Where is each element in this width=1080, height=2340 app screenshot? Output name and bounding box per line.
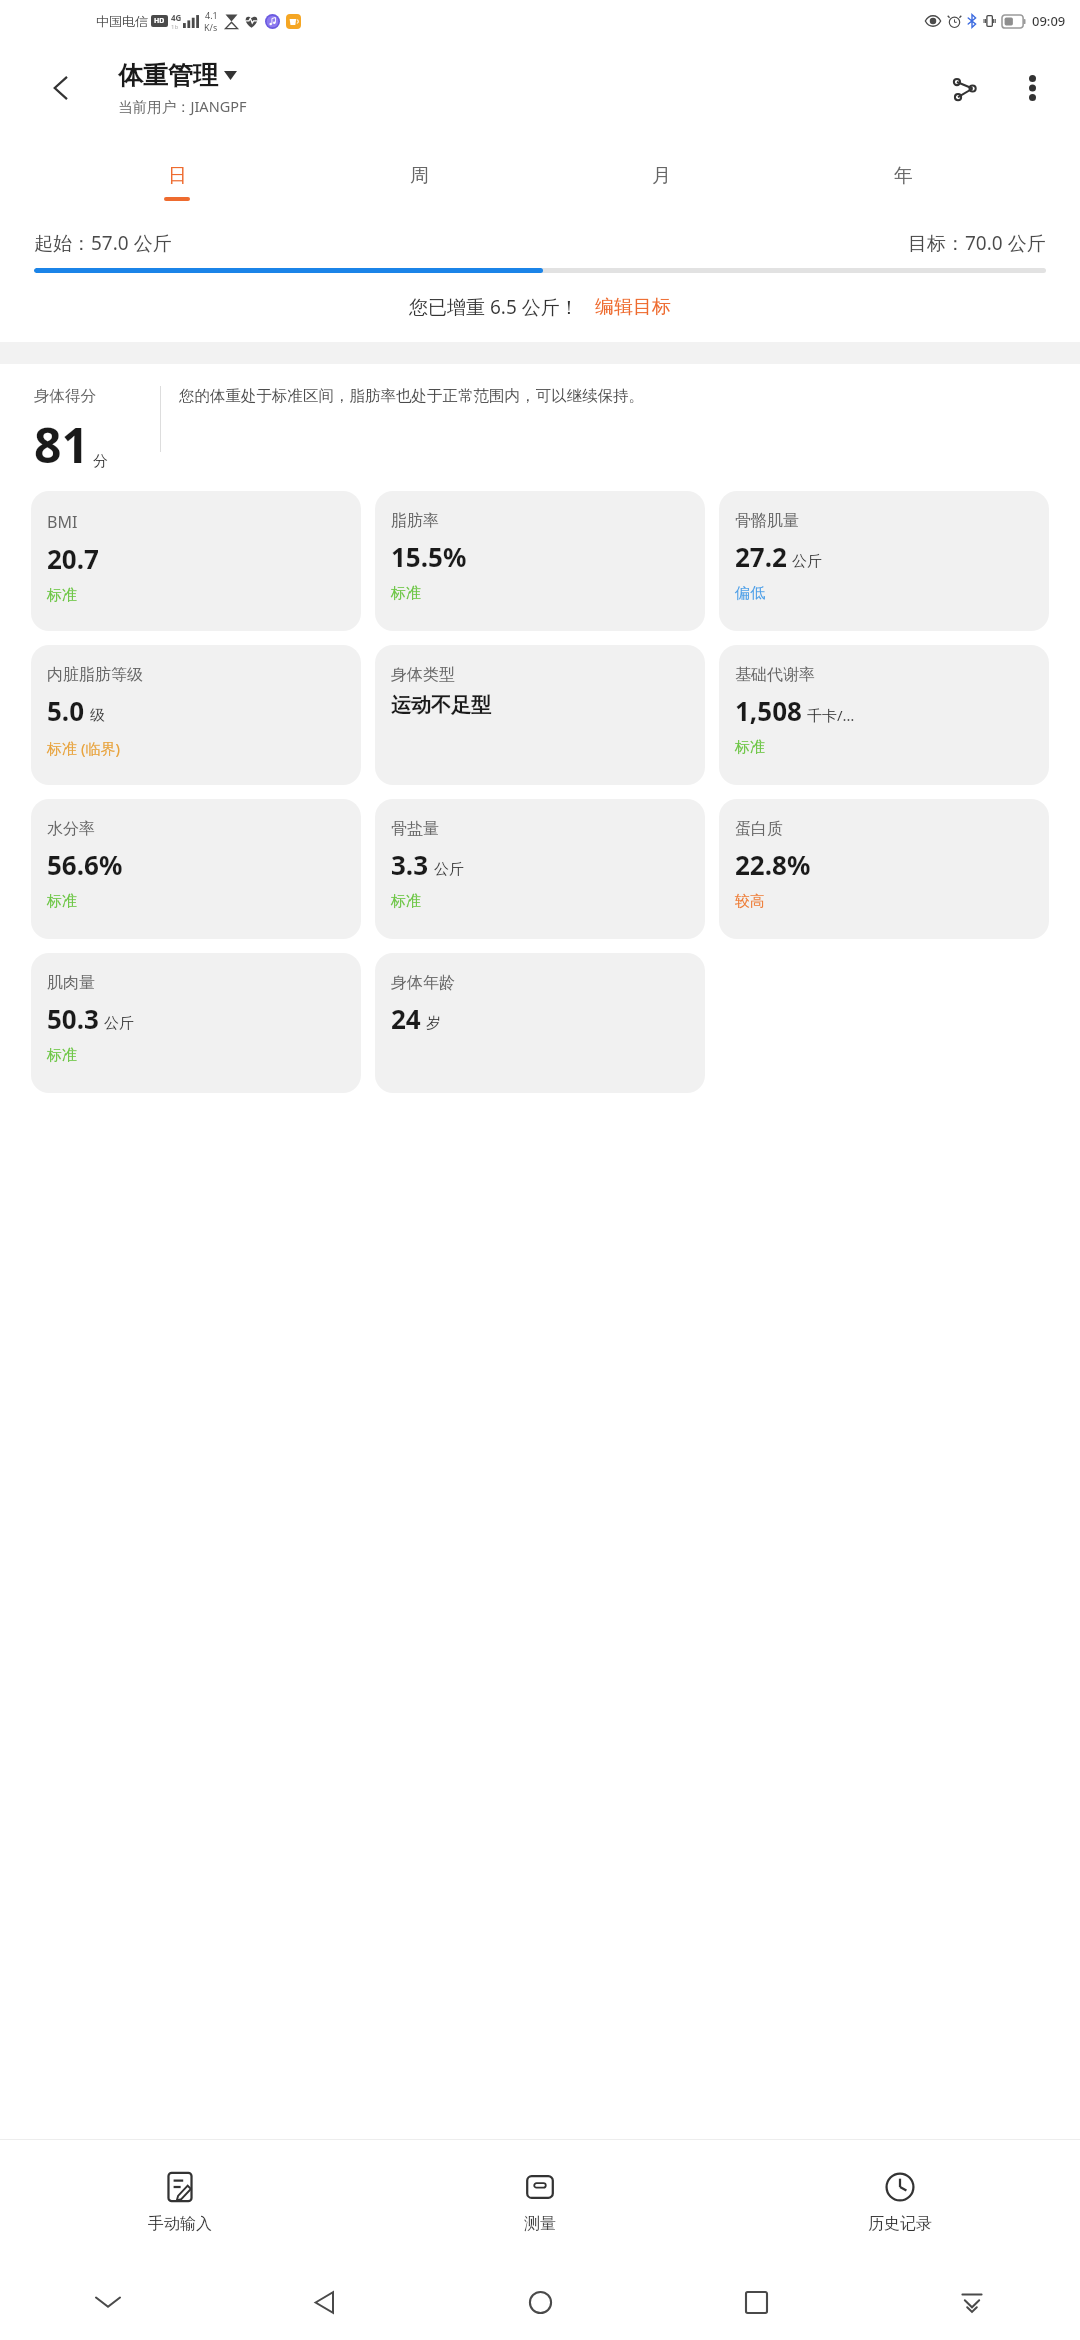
staticText: 81: [34, 412, 89, 477]
button[interactable]: Back: [216, 2264, 432, 2340]
staticText: 标准 (临界): [47, 738, 120, 758]
staticText: 4.1: [205, 9, 218, 21]
staticText: 水分率: [47, 819, 95, 839]
staticText: BMI: [47, 511, 78, 533]
button[interactable]: BMI: [31, 491, 361, 631]
staticText: 周: [410, 164, 429, 188]
staticText: 测量: [524, 2214, 556, 2234]
button[interactable]: Recents: [648, 2264, 864, 2340]
staticText: 较高: [735, 892, 765, 911]
staticText: 脂肪率: [391, 511, 439, 531]
staticText: 公斤: [104, 1014, 134, 1033]
staticText: HD: [154, 16, 165, 26]
staticText: 基础代谢率: [735, 665, 815, 685]
staticText: 您已增重 6.5 公斤！: [409, 294, 579, 320]
button[interactable]: 手动输入: [0, 2140, 360, 2264]
staticText: 日: [168, 164, 187, 188]
staticText: 50.3: [47, 1001, 99, 1036]
button[interactable]: 年: [782, 134, 1024, 230]
staticText: 手动输入: [148, 2214, 212, 2234]
staticText: 月: [652, 164, 671, 188]
staticText: 您的体重处于标准区间，脂肪率也处于正常范围内，可以继续保持。: [179, 386, 1050, 406]
button[interactable]: 水分率: [31, 799, 361, 939]
button[interactable]: 内脏脂肪等级: [31, 645, 361, 785]
staticText: 内脏脂肪等级: [47, 665, 143, 685]
button[interactable]: 身体类型: [375, 645, 705, 785]
staticText: 年: [894, 164, 913, 188]
button[interactable]: 身体年龄: [375, 953, 705, 1093]
staticText: 标准: [47, 1046, 77, 1065]
button[interactable]: Download: [864, 2264, 1080, 2340]
button[interactable]: Share: [938, 62, 990, 114]
button[interactable]: 蛋白质: [719, 799, 1049, 939]
staticText: 56.6%: [47, 847, 123, 882]
staticText: 20.7: [47, 541, 99, 576]
button[interactable]: 基础代谢率: [719, 645, 1049, 785]
button[interactable]: Collapse: [0, 2264, 216, 2340]
button[interactable]: Home: [432, 2264, 648, 2340]
staticText: 身体年龄: [391, 973, 455, 993]
staticText: 骨骼肌量: [735, 511, 799, 531]
staticText: 目标：70.0 公斤: [908, 230, 1046, 256]
staticText: 公斤: [792, 552, 822, 571]
staticText: 级: [90, 706, 105, 725]
button[interactable]: Back: [36, 62, 88, 114]
staticText: 身体类型: [391, 665, 455, 685]
staticText: 标准: [735, 738, 765, 757]
staticText: 4G: [171, 12, 182, 23]
staticText: 当前用户：JIANGPF: [118, 96, 247, 116]
staticText: 标准: [391, 892, 421, 911]
button[interactable]: 月: [540, 134, 782, 230]
button[interactable]: 脂肪率: [375, 491, 705, 631]
button[interactable]: 骨盐量: [375, 799, 705, 939]
staticText: 3.3: [391, 847, 429, 882]
staticText: 5.0: [47, 693, 85, 728]
staticText: 身体得分: [34, 386, 96, 406]
button[interactable]: 编辑目标: [595, 295, 671, 319]
staticText: 千卡/…: [807, 705, 855, 725]
staticText: 岁: [426, 1014, 441, 1033]
staticText: 24: [391, 1001, 421, 1036]
button[interactable]: 测量: [360, 2140, 720, 2264]
staticText: 标准: [391, 584, 421, 603]
staticText: 27.2: [735, 539, 787, 574]
staticText: 编辑目标: [595, 295, 671, 319]
staticText: 肌肉量: [47, 973, 95, 993]
staticText: 标准: [47, 586, 77, 605]
staticText: 15.5%: [391, 539, 467, 574]
staticText: 09:09: [1032, 12, 1066, 30]
staticText: 分: [93, 452, 108, 471]
staticText: 中国电信: [96, 13, 148, 29]
button[interactable]: 历史记录: [720, 2140, 1080, 2264]
staticText: 1b: [171, 23, 179, 31]
staticText: 历史记录: [868, 2214, 932, 2234]
staticText: 蛋白质: [735, 819, 783, 839]
button[interactable]: 骨骼肌量: [719, 491, 1049, 631]
button[interactable]: More options: [1006, 62, 1058, 114]
staticText: 体重管理: [118, 60, 218, 91]
staticText: 22.8%: [735, 847, 811, 882]
staticText: 运动不足型: [391, 693, 491, 718]
staticText: K/s: [204, 21, 218, 33]
staticText: 起始：57.0 公斤: [34, 230, 172, 256]
button[interactable]: 肌肉量: [31, 953, 361, 1093]
button[interactable]: 日: [56, 134, 298, 230]
staticText: 公斤: [434, 860, 464, 879]
staticText: 偏低: [735, 584, 765, 603]
staticText: 标准: [47, 892, 77, 911]
button[interactable]: 周: [298, 134, 540, 230]
staticText: 骨盐量: [391, 819, 439, 839]
staticText: 1,508: [735, 693, 802, 728]
